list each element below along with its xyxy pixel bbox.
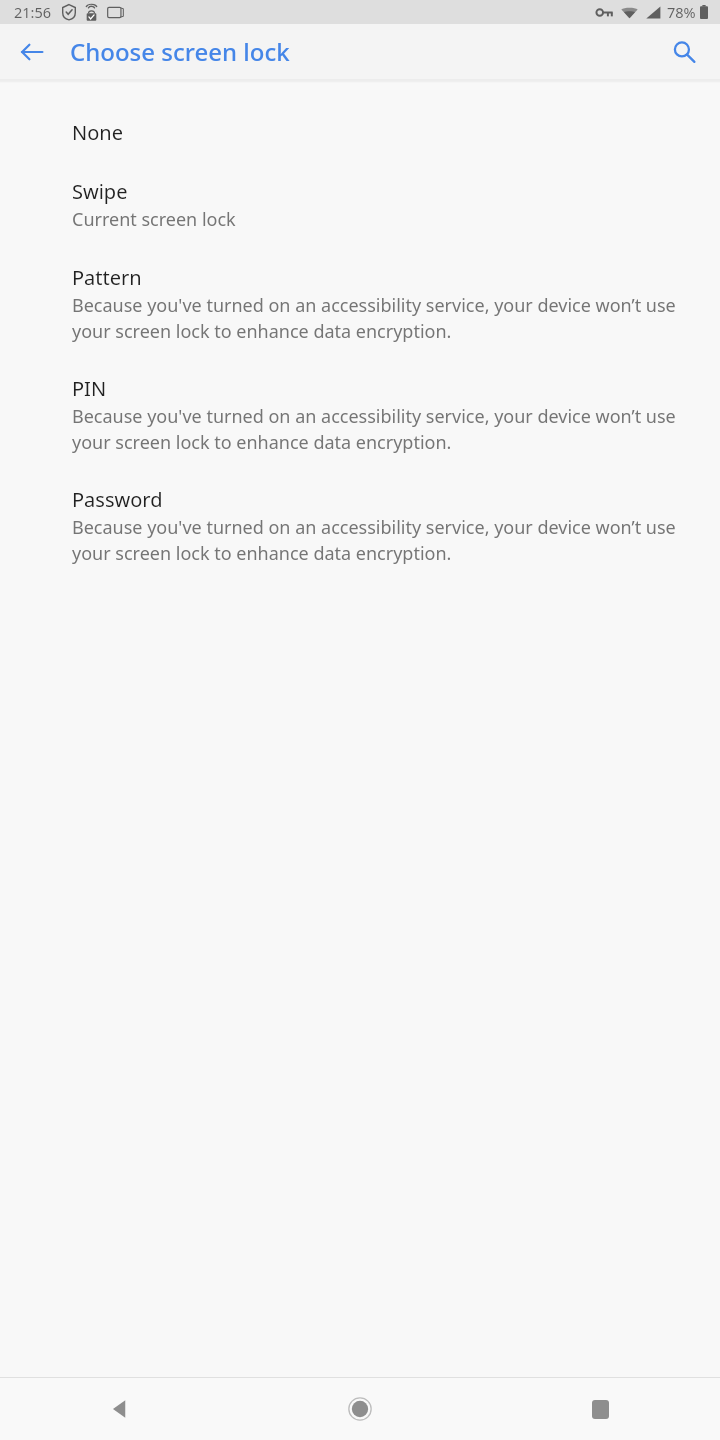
button[interactable]: Password (0, 470, 720, 581)
staticText: Because you've turned on an accessibilit… (72, 404, 692, 454)
button[interactable]: Back (0, 1398, 240, 1420)
staticText: 78% (667, 2, 696, 22)
button[interactable]: None (0, 103, 720, 162)
staticText: Because you've turned on an accessibilit… (72, 293, 692, 343)
staticText: PIN (72, 375, 107, 402)
staticText: Password (72, 486, 163, 513)
staticText: 21:56 (14, 2, 52, 22)
button[interactable]: Recent apps (480, 1400, 720, 1419)
button[interactable]: Pattern (0, 248, 720, 359)
staticText: Current screen lock (72, 207, 692, 232)
staticText: Pattern (72, 264, 142, 291)
button[interactable]: Back (8, 28, 56, 76)
staticText: Choose screen lock (70, 35, 290, 68)
staticText: Because you've turned on an accessibilit… (72, 515, 692, 565)
button[interactable]: Home (240, 1397, 480, 1421)
button[interactable]: Swipe (0, 162, 720, 248)
button[interactable]: PIN (0, 359, 720, 470)
staticText: Swipe (72, 178, 128, 205)
button[interactable]: Search (660, 28, 708, 76)
staticText: None (72, 119, 123, 146)
